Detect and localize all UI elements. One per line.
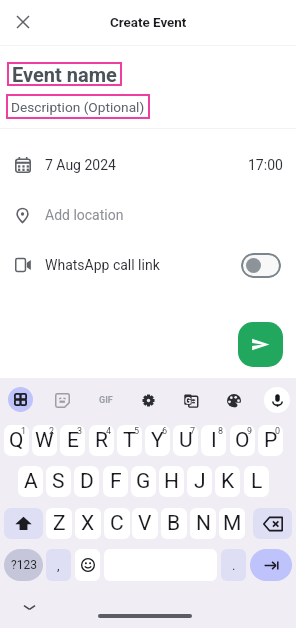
button[interactable]: A (18, 466, 43, 497)
button[interactable]: Translate (177, 387, 204, 414)
button[interactable]: 7 Aug 2024 (0, 140, 296, 190)
button[interactable]: Q (4, 425, 29, 456)
button[interactable]: Voice input (264, 387, 290, 413)
staticText: Event name (12, 63, 117, 86)
staticText: 9 (247, 426, 253, 437)
button[interactable]: Toggle WhatsApp call link (241, 253, 281, 278)
staticText: P (264, 428, 278, 453)
button[interactable]: G (131, 466, 156, 497)
button[interactable]: H (159, 466, 184, 497)
button[interactable]: ?123 (4, 549, 43, 581)
button[interactable]: Enter (250, 549, 292, 581)
button[interactable]: F (103, 466, 128, 497)
button[interactable]: Keyboard toolbar (8, 387, 33, 412)
button[interactable]: P (258, 425, 283, 456)
button[interactable]: Description (Optional) (6, 94, 150, 119)
staticText: Add location (45, 207, 124, 223)
button[interactable]: W (32, 425, 57, 456)
button[interactable]: X (75, 508, 101, 539)
staticText: G (136, 469, 151, 494)
staticText: ?123 (11, 558, 37, 572)
staticText: 8 (218, 426, 224, 437)
staticText: C (110, 511, 124, 536)
staticText: B (167, 511, 181, 536)
button[interactable]: Close (8, 7, 38, 37)
button[interactable]: Backspace (253, 508, 292, 539)
button[interactable]: Settings (135, 387, 162, 414)
staticText: Y (151, 428, 164, 453)
staticText: 4 (106, 426, 112, 437)
staticText: G (185, 396, 192, 407)
staticText: U (179, 428, 193, 453)
button[interactable]: Theme (220, 387, 247, 414)
staticText: S (52, 469, 65, 494)
staticText: . (232, 558, 236, 573)
button[interactable]: T (117, 425, 142, 456)
button[interactable]: I (201, 425, 226, 456)
button[interactable]: D (74, 466, 99, 497)
staticText: O (235, 428, 250, 453)
button[interactable]: Stickers (49, 387, 76, 414)
button[interactable]: C (104, 508, 130, 539)
staticText: , (57, 558, 60, 573)
staticText: 5 (134, 426, 140, 437)
button[interactable]: L (244, 466, 269, 497)
staticText: Z (53, 511, 66, 536)
staticText: Q (9, 428, 24, 453)
staticText: K (221, 469, 235, 494)
staticText: W (35, 428, 54, 453)
staticText: D (80, 469, 94, 494)
button[interactable]: E (60, 425, 85, 456)
staticText: Description (Optional) (11, 99, 145, 115)
button[interactable]: Event name (7, 62, 122, 86)
staticText: I (211, 428, 217, 453)
button[interactable]: R (89, 425, 114, 456)
button[interactable]: Hide keyboard (18, 596, 40, 618)
button[interactable]: . (221, 549, 246, 581)
staticText: 1 (21, 426, 27, 437)
staticText: Create Event (110, 15, 187, 31)
staticText: X (81, 511, 95, 536)
staticText: L (251, 469, 263, 494)
button[interactable]: O (230, 425, 255, 456)
button[interactable]: GIF (92, 387, 119, 414)
button[interactable]: N (190, 508, 216, 539)
staticText: H (164, 469, 179, 494)
button[interactable]: U (173, 425, 198, 456)
staticText: T (123, 428, 136, 453)
button[interactable]: K (215, 466, 240, 497)
staticText: 7 Aug 2024 (45, 157, 116, 173)
button[interactable]: , (46, 549, 71, 581)
staticText: 3 (77, 426, 83, 437)
staticText: 0 (275, 426, 281, 437)
staticText: V (138, 511, 152, 536)
button[interactable]: Y (145, 425, 170, 456)
staticText: 17:00 (248, 157, 283, 173)
staticText: E (67, 428, 79, 453)
button[interactable]: Send (238, 322, 283, 367)
staticText: 2 (49, 426, 55, 437)
staticText: N (196, 511, 211, 536)
button[interactable]: Emoji (75, 549, 100, 581)
button[interactable]: J (187, 466, 212, 497)
staticText: R (95, 428, 108, 453)
staticText: GIF (99, 395, 113, 406)
staticText: 6 (162, 426, 168, 437)
button[interactable]: V (132, 508, 158, 539)
button[interactable]: Add location (0, 190, 296, 240)
button[interactable]: S (46, 466, 71, 497)
button[interactable]: Shift (4, 508, 43, 539)
staticText: A (24, 469, 38, 494)
staticText: M (223, 511, 242, 536)
staticText: 7 (190, 426, 196, 437)
staticText: J (194, 469, 206, 494)
staticText: WhatsApp call link (45, 257, 160, 273)
button[interactable]: B (161, 508, 187, 539)
staticText: F (110, 469, 122, 494)
button[interactable]: Z (46, 508, 72, 539)
button[interactable]: M (219, 508, 245, 539)
